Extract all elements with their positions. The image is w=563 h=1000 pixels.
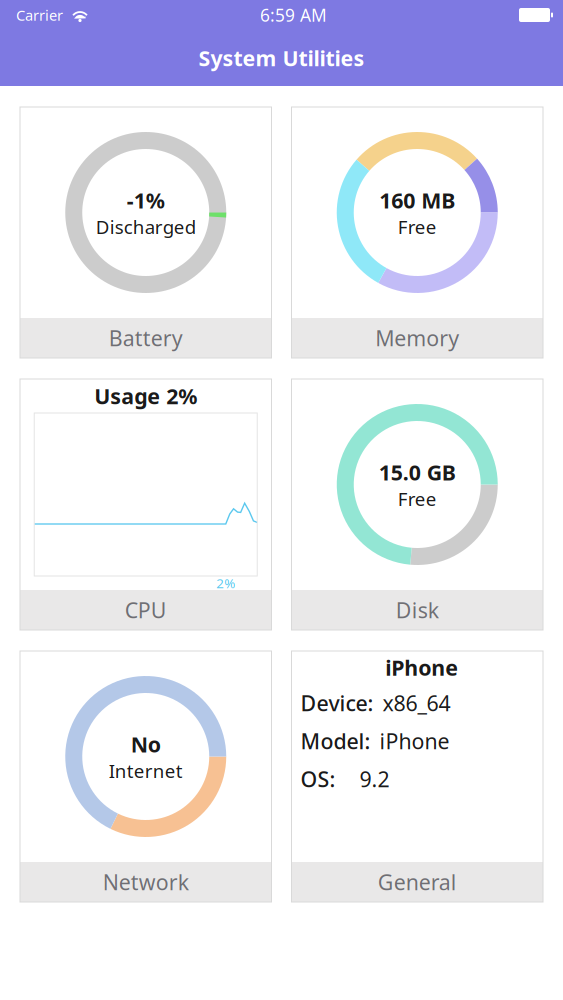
staticText: 160 MB (379, 186, 455, 214)
button[interactable]: iPhone (291, 651, 543, 902)
staticText: CPU (125, 596, 167, 624)
staticText: System Utilities (198, 44, 364, 72)
staticText: Battery (109, 324, 183, 352)
staticText: 6:59 AM (260, 3, 327, 26)
staticText: iPhone (385, 653, 458, 682)
staticText: Disk (396, 596, 439, 624)
staticText: 2% (216, 574, 235, 592)
staticText: OS: (300, 765, 335, 793)
staticText: Free (398, 214, 437, 239)
button[interactable]: 15.0 GB (291, 379, 543, 630)
staticText: Discharged (96, 214, 196, 239)
staticText: 9.2 (359, 765, 389, 793)
staticText: x86_64 (382, 689, 450, 717)
staticText: General (378, 868, 457, 896)
staticText: Network (103, 868, 189, 896)
button[interactable]: 160 MB (291, 107, 543, 358)
staticText: Device: (300, 689, 373, 717)
button[interactable]: -1% (20, 107, 271, 358)
staticText: -1% (127, 186, 165, 214)
button[interactable]: No (20, 651, 271, 902)
staticText: Usage 2% (94, 382, 197, 410)
button[interactable]: Usage 2% (20, 379, 271, 630)
staticText: Carrier (16, 5, 63, 25)
staticText: Model: (300, 727, 370, 755)
staticText: 15.0 GB (379, 458, 456, 486)
staticText: Memory (375, 324, 459, 352)
staticText: Free (398, 486, 437, 511)
staticText: iPhone (379, 727, 449, 755)
staticText: Internet (109, 758, 183, 783)
staticText: No (131, 730, 161, 758)
